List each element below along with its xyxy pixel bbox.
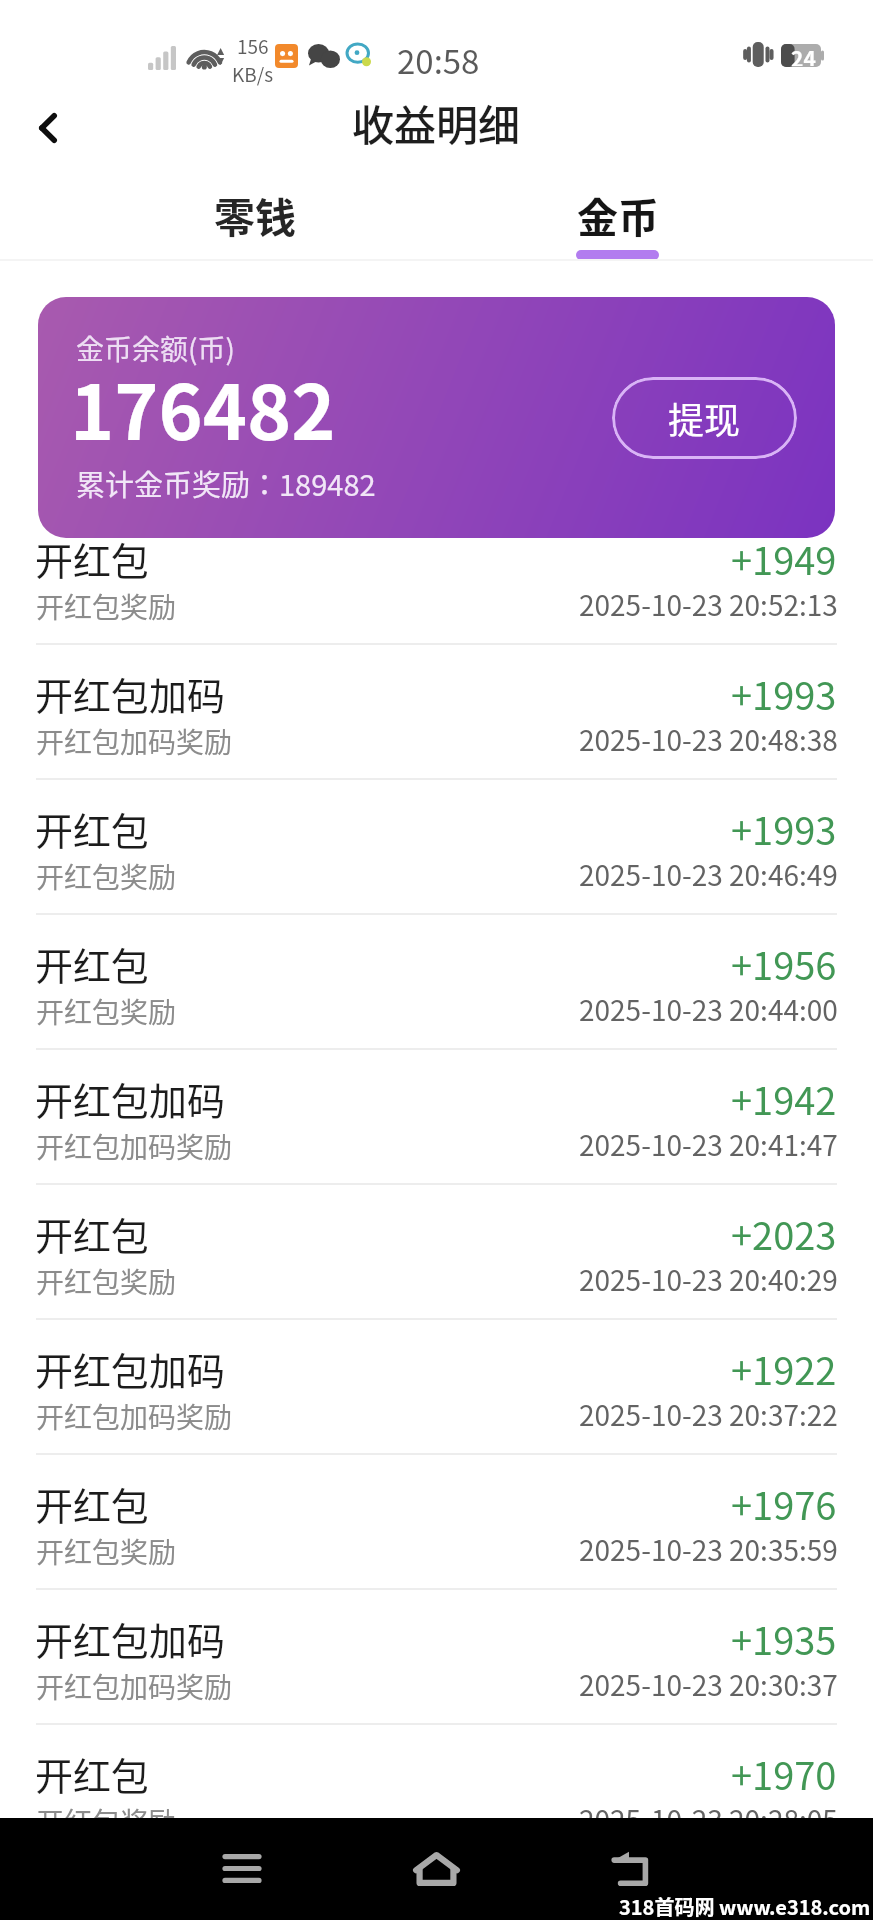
staticText: 开红包加码奖励 — [36, 1126, 233, 1167]
staticText: 零钱 — [214, 185, 296, 244]
staticText: 开红包加码奖励 — [36, 721, 233, 762]
button[interactable]: Back — [595, 1836, 667, 1900]
button[interactable]: Back — [16, 95, 80, 175]
staticText: 开红包奖励 — [36, 586, 177, 627]
staticText: 2025-10-23 20:40:29 — [579, 1259, 838, 1300]
staticText: 金币 — [577, 185, 659, 244]
staticText: 2025-10-23 20:44:00 — [579, 989, 838, 1030]
button[interactable]: Home — [400, 1836, 472, 1900]
staticText: 2025-10-23 20:35:59 — [579, 1529, 838, 1570]
staticText: 176482 — [70, 353, 336, 462]
button[interactable]: 开红包 — [0, 915, 873, 1050]
staticText: +1949 — [731, 531, 837, 586]
staticText: 2025-10-23 20:28:05 — [579, 1799, 838, 1840]
staticText: 提现 — [668, 392, 741, 444]
staticText: 开红包加码 — [35, 1071, 226, 1126]
staticText: 开红包加码 — [35, 1341, 226, 1396]
staticText: 24 — [791, 43, 816, 66]
button[interactable]: Recent apps — [206, 1836, 278, 1900]
staticText: 开红包奖励 — [36, 991, 177, 1032]
button[interactable]: 开红包加码 — [0, 645, 873, 780]
staticText: +1922 — [731, 1341, 837, 1396]
staticText: +2023 — [731, 1206, 837, 1261]
staticText: +1942 — [731, 1071, 837, 1126]
button[interactable]: 开红包 — [0, 1725, 873, 1860]
staticText: 开红包 — [35, 1206, 150, 1261]
staticText: KB/s — [232, 60, 274, 88]
staticText: +1993 — [731, 666, 837, 721]
staticText: 开红包加码奖励 — [36, 1396, 233, 1437]
staticText: 开红包奖励 — [36, 1261, 177, 1302]
staticText: 2025-10-23 20:48:38 — [579, 719, 838, 760]
staticText: 累计金币奖励：189482 — [76, 462, 376, 504]
staticText: 开红包奖励 — [36, 856, 177, 897]
button[interactable]: 提现 — [612, 377, 797, 459]
staticText: 开红包 — [35, 1476, 150, 1531]
staticText: +1970 — [731, 1746, 837, 1801]
button[interactable]: 开红包加码 — [0, 1320, 873, 1455]
staticText: 开红包奖励 — [36, 1801, 177, 1842]
button[interactable]: 零钱 — [74, 177, 436, 261]
staticText: 开红包加码 — [35, 666, 226, 721]
staticText: 2025-10-23 20:30:37 — [579, 1664, 838, 1705]
staticText: 开红包加码 — [35, 1611, 226, 1666]
button[interactable]: 开红包 — [0, 1455, 873, 1590]
staticText: 2025-10-23 20:46:49 — [579, 854, 838, 895]
staticText: 318首码网 www.e318.com — [619, 1892, 871, 1920]
button[interactable]: 开红包加码 — [0, 1050, 873, 1185]
staticText: 收益明细 — [352, 92, 521, 153]
staticText: 2025-10-23 20:37:22 — [579, 1394, 838, 1435]
staticText: +1976 — [731, 1476, 837, 1531]
staticText: 开红包加码奖励 — [36, 1666, 233, 1707]
staticText: +1935 — [731, 1611, 837, 1666]
button[interactable]: 开红包加码 — [0, 1590, 873, 1725]
staticText: 金币余额(币) — [76, 328, 235, 369]
staticText: +1993 — [731, 801, 837, 856]
button[interactable]: 开红包 — [0, 1185, 873, 1320]
staticText: 2025-10-23 20:52:13 — [579, 584, 838, 625]
button[interactable]: 开红包 — [0, 780, 873, 915]
staticText: +1956 — [731, 936, 837, 991]
staticText: 开红包 — [35, 936, 150, 991]
staticText: 开红包 — [35, 531, 150, 586]
staticText: 2025-10-23 20:41:47 — [579, 1124, 838, 1165]
staticText: 开红包 — [35, 801, 150, 856]
staticText: 20:58 — [397, 36, 480, 84]
staticText: 开红包 — [35, 1746, 150, 1801]
staticText: 156 — [237, 32, 269, 60]
button[interactable]: 开红包 — [0, 510, 873, 645]
button[interactable]: 金币 — [436, 177, 799, 261]
staticText: 开红包奖励 — [36, 1531, 177, 1572]
